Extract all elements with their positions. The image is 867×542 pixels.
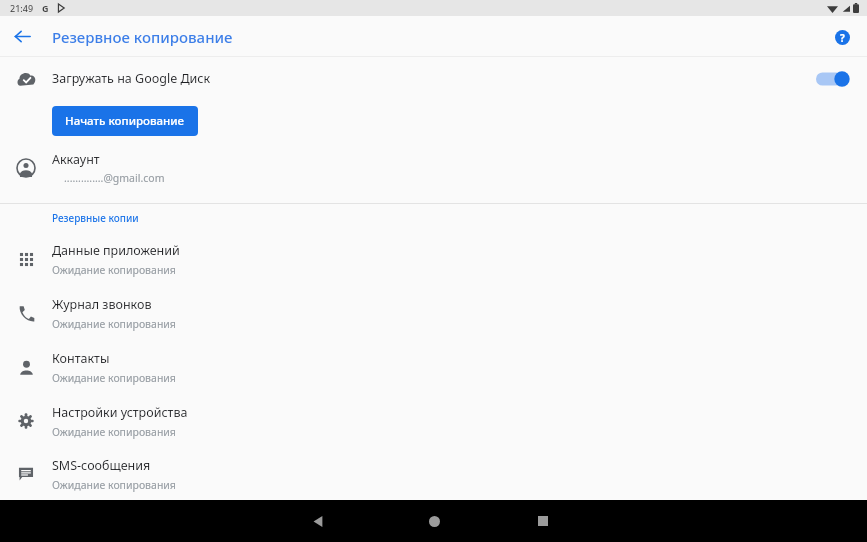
staticText: Данные приложений [52,242,180,259]
staticText: Аккаунт [52,151,100,168]
staticText: Ожидание копирования [52,371,176,385]
staticText: Настройки устройства [52,404,188,421]
staticText: Журнал звонков [52,296,152,313]
staticText: Резервные копии [52,211,139,225]
button[interactable]: Начать копирование [52,106,198,136]
button[interactable]: Загружать на Google Диск [0,57,867,100]
staticText: ..............@gmail.com [64,171,165,185]
button[interactable]: SMS-сообщения [0,448,867,500]
button[interactable]: Обзор [525,503,561,539]
button[interactable]: Назад [300,503,336,539]
staticText: 21:49 [10,2,34,14]
staticText: Ожидание копирования [52,425,176,439]
staticText: Начать копирование [65,113,185,129]
staticText: Ожидание копирования [52,478,176,492]
staticText: ? [840,31,845,45]
staticText: Ожидание копирования [52,317,176,331]
staticText: Резервное копирование [52,27,233,47]
button[interactable]: Настройки устройства [0,394,867,448]
button[interactable]: Главный экран [416,503,452,539]
button[interactable]: Данные приложений [0,232,867,286]
button[interactable]: Аккаунт [0,142,867,194]
button[interactable]: Журнал звонков [0,286,867,340]
button[interactable]: Справка [827,22,857,52]
staticText: SMS-сообщения [52,457,151,474]
button[interactable]: Назад [0,16,44,57]
button[interactable]: Контакты [0,340,867,394]
staticText: G [42,2,49,14]
staticText: Загружать на Google Диск [52,70,211,87]
staticText: Контакты [52,350,110,367]
staticText: Ожидание копирования [52,263,176,277]
